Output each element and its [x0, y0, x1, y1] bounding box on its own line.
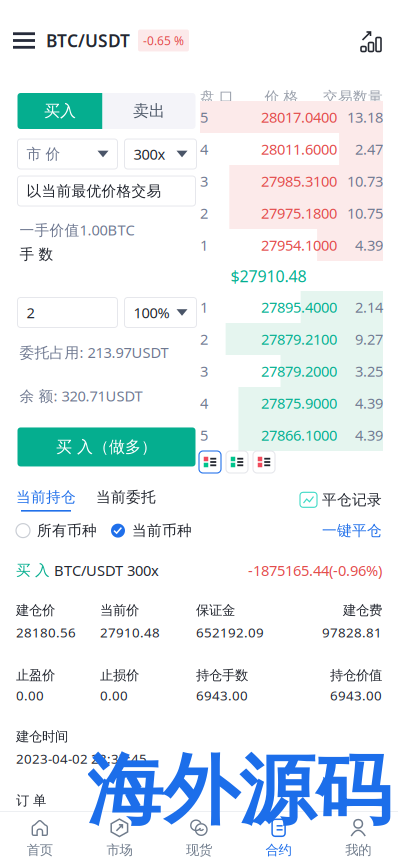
staticText: 持仓手数: [196, 667, 248, 684]
staticText: 止损价: [100, 667, 139, 684]
staticText: 2023-04-02 23:37:45: [16, 750, 147, 767]
staticText: 28180.56: [16, 623, 76, 641]
button[interactable]: 市场: [80, 812, 159, 863]
button[interactable]: 当前委托: [76, 488, 156, 512]
button[interactable]: 我的: [318, 812, 398, 863]
staticText: 手 数: [19, 245, 53, 263]
staticText: 买 入（做多）: [56, 437, 157, 457]
staticText: 以当前最优价格交易: [26, 182, 161, 200]
staticText: 市 价: [26, 145, 60, 163]
staticText: 100%: [133, 303, 169, 322]
staticText: 现货: [186, 842, 212, 858]
staticText: 0.00: [16, 687, 44, 704]
button[interactable]: 一键平仓: [322, 522, 382, 540]
staticText: 28017.0400: [261, 107, 337, 127]
staticText: 首页: [27, 842, 53, 858]
staticText: 卖出: [133, 101, 165, 121]
staticText: 97828.81: [322, 623, 382, 641]
staticText: 5: [200, 425, 208, 445]
staticText: 当前持仓: [16, 488, 76, 506]
staticText: 6943.00: [196, 687, 248, 704]
staticText: 652192.09: [196, 623, 264, 641]
staticText: 市场: [106, 842, 132, 858]
staticText: 我的: [345, 842, 371, 858]
staticText: 27879.2100: [261, 329, 337, 349]
staticText: 4.39: [355, 235, 383, 255]
staticText: 2.47: [355, 139, 383, 159]
staticText: 建仓价: [16, 602, 55, 618]
button[interactable]: Sell depth: [254, 452, 274, 472]
staticText: 委托占用: 213.97USDT: [19, 342, 168, 362]
staticText: -1875165.44(-0.96%): [248, 561, 382, 580]
staticText: 27879.2000: [261, 361, 337, 381]
staticText: 1: [200, 235, 208, 255]
button[interactable]: 当前持仓: [16, 488, 76, 512]
staticText: BTC/USDT 300x: [50, 561, 159, 580]
button[interactable]: 平仓记录: [300, 491, 382, 509]
staticText: 0.00: [100, 687, 128, 704]
staticText: 10.75: [347, 203, 383, 223]
button[interactable]: 合约: [239, 812, 318, 863]
staticText: 建仓时间: [16, 728, 68, 745]
staticText: -0.65 %: [143, 32, 184, 48]
staticText: 余 额: 320.71USDT: [19, 386, 142, 405]
staticText: 当前币种: [132, 522, 192, 540]
button[interactable]: Chart: [360, 28, 398, 52]
staticText: 合约: [266, 842, 292, 858]
staticText: 2.14: [355, 297, 383, 317]
staticText: 价 格: [264, 88, 298, 106]
staticText: 28011.6000: [261, 139, 337, 159]
button[interactable]: 买入: [17, 93, 102, 129]
staticText: 5: [200, 107, 208, 127]
staticText: 买入: [44, 101, 76, 121]
staticText: 一手价值1.00BTC: [19, 220, 134, 239]
staticText: 订 单: [16, 792, 46, 809]
staticText: 300x: [133, 144, 165, 164]
staticText: 6943.00: [330, 687, 382, 704]
staticText: 27895.4000: [261, 297, 337, 317]
staticText: $27910.48: [230, 265, 306, 287]
staticText: 所有币种: [37, 522, 97, 540]
staticText: 4: [200, 139, 208, 159]
staticText: 2: [26, 303, 34, 322]
staticText: 盘 口: [200, 88, 234, 106]
button[interactable]: 买 入（做多）: [17, 427, 195, 466]
button[interactable]: 卖出: [102, 93, 195, 129]
staticText: BTC/USDT: [46, 29, 130, 52]
staticText: 2: [200, 203, 208, 223]
staticText: 建仓费: [343, 602, 382, 618]
staticText: 持仓价值: [330, 667, 382, 684]
staticText: 当前价: [100, 602, 139, 618]
staticText: 平仓记录: [322, 491, 382, 509]
staticText: 保证金: [196, 602, 235, 618]
staticText: 9.27: [355, 329, 383, 349]
staticText: 27910.48: [100, 623, 160, 641]
staticText: 2: [200, 329, 208, 349]
button[interactable]: Both depth: [200, 452, 220, 472]
staticText: 27866.1000: [261, 425, 337, 445]
staticText: 交易数量: [323, 88, 383, 106]
staticText: 27985.3100: [261, 171, 337, 191]
staticText: 27975.1800: [261, 203, 337, 223]
staticText: 4: [200, 393, 208, 413]
staticText: 当前委托: [96, 488, 156, 506]
staticText: 3: [200, 171, 208, 191]
staticText: 1: [200, 297, 208, 317]
staticText: 3.25: [355, 361, 383, 381]
button[interactable]: Buy depth: [227, 452, 247, 472]
staticText: 3: [200, 361, 208, 381]
staticText: 4.39: [355, 425, 383, 445]
staticText: 一键平仓: [322, 522, 382, 540]
staticText: 4.39: [355, 393, 383, 413]
button[interactable]: 现货: [159, 812, 239, 863]
staticText: 27954.1000: [261, 235, 337, 255]
staticText: 10.73: [347, 171, 383, 191]
staticText: 27875.9000: [261, 393, 337, 413]
button[interactable]: Menu: [2, 18, 46, 62]
button[interactable]: 首页: [0, 812, 80, 863]
staticText: 13.18: [347, 107, 383, 127]
staticText: 买 入: [16, 561, 50, 579]
staticText: 止盈价: [16, 667, 55, 684]
staticText: 海外源码: [87, 744, 391, 838]
